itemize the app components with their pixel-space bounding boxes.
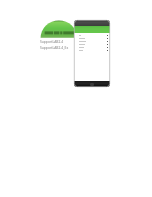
button[interactable] xyxy=(74,40,110,43)
button[interactable] xyxy=(74,37,110,40)
staticText: SupportLAB2.4_Ex xyxy=(40,45,69,49)
button[interactable] xyxy=(74,43,110,46)
staticText: SupportLAB2.4 xyxy=(40,39,64,43)
button[interactable] xyxy=(74,34,110,37)
button[interactable] xyxy=(74,46,110,49)
button[interactable] xyxy=(74,49,110,52)
